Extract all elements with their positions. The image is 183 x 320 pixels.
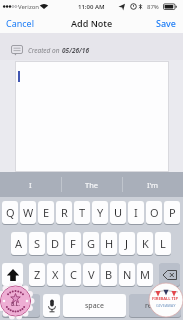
button[interactable]: V [83,263,99,286]
staticText: 123 [15,301,28,311]
button[interactable]: W [20,201,36,224]
button[interactable]: J [119,232,135,255]
staticText: 87% [147,3,159,11]
button[interactable]: B [101,263,117,286]
button[interactable]: The [62,172,122,197]
button[interactable]: N [119,263,135,286]
staticText: S [34,236,41,251]
button[interactable]: D [47,232,63,255]
staticText: B.L. [11,301,20,308]
staticText: T [79,205,86,220]
staticText: GIVEAWAY [156,303,176,308]
staticText: E [43,205,50,220]
button[interactable]: G [83,232,99,255]
button[interactable]: Cancel [4,15,37,31]
staticText: Cancel [6,17,35,29]
staticText: Add Note [71,17,113,29]
staticText: Save [156,17,177,29]
button[interactable]: A [11,232,27,255]
staticText: N [123,267,132,282]
staticText: F [70,236,76,251]
staticText: X [52,267,59,282]
staticText: I [134,205,138,220]
staticText: I'm [147,180,159,190]
staticText: return [145,301,166,311]
button[interactable] [2,263,23,286]
button[interactable] [43,294,60,317]
button[interactable]: 123 [2,294,40,317]
staticText: A [15,236,23,251]
staticText: V [88,267,95,282]
staticText: Z [34,267,41,282]
staticText: 11:00 AM [78,3,105,11]
button[interactable]: Y [92,201,108,224]
staticText: M [140,267,150,282]
button[interactable] [159,263,180,286]
staticText: Y [97,205,104,220]
staticText: C [70,267,77,282]
button[interactable]: T [74,201,90,224]
button[interactable]: Save [154,15,179,31]
staticText: 05/26/16 [62,46,90,55]
button[interactable]: Z [29,263,45,286]
button[interactable]: L [155,232,171,255]
button[interactable]: Q [2,201,18,224]
button[interactable]: E [38,201,54,224]
button[interactable]: S [29,232,45,255]
button[interactable]: M [137,263,153,286]
staticText: U [114,205,123,220]
button[interactable]: O [146,201,162,224]
button[interactable]: K [137,232,153,255]
staticText: W [23,205,34,220]
button[interactable]: H [101,232,117,255]
staticText: K [142,236,149,251]
button[interactable]: I'm [123,172,183,197]
button[interactable]: C [65,263,81,286]
button[interactable]: space [63,294,126,317]
button[interactable]: P [164,201,180,224]
staticText: FIREBALL TIP [152,296,178,301]
staticText: J [125,236,129,251]
staticText: R [61,205,68,220]
button[interactable]: X [47,263,63,286]
staticText: G [87,236,96,251]
button[interactable]: return [129,294,181,317]
staticText: D [51,236,60,251]
button[interactable]: F [65,232,81,255]
staticText: L [160,236,166,251]
button[interactable] [15,61,169,172]
staticText: Verizon [18,3,40,11]
staticText: B [105,267,113,282]
staticText: Q [6,205,15,220]
staticText: P [169,205,176,220]
staticText: space [85,301,104,311]
staticText: The [85,180,99,190]
button[interactable]: I [0,172,61,197]
button[interactable]: R [56,201,72,224]
button[interactable]: U [110,201,126,224]
staticText: I [29,180,32,190]
button[interactable]: I [128,201,144,224]
staticText: Created on [28,46,62,55]
staticText: H [105,236,114,251]
staticText: O [150,205,159,220]
